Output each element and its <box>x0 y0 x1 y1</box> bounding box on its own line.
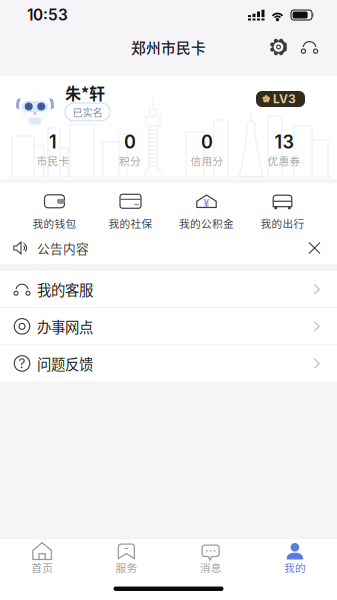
button[interactable]: 首页 <box>0 543 84 575</box>
staticText: 我的出行 <box>260 215 304 231</box>
staticText: 郑州市民卡 <box>131 36 206 58</box>
staticText: 信用分 <box>190 153 223 168</box>
button[interactable]: 我的 <box>253 543 337 575</box>
staticText: 办事网点 <box>37 316 93 337</box>
staticText: 积分 <box>119 153 141 168</box>
button[interactable]: 0 <box>168 131 245 168</box>
staticText: LV3 <box>273 91 296 106</box>
staticText: 服务 <box>115 560 137 575</box>
staticText: 0 <box>124 131 136 153</box>
staticText: 我的公积金 <box>179 215 234 231</box>
button[interactable]: 我的出行 <box>244 189 320 226</box>
button[interactable]: 13 <box>245 131 322 168</box>
button[interactable]: ? <box>0 345 337 382</box>
staticText: 首页 <box>31 560 53 575</box>
staticText: 10:53 <box>27 6 68 24</box>
button[interactable]: 消息 <box>168 543 253 575</box>
button[interactable]: 我的客服 <box>0 271 337 307</box>
button[interactable]: 已实名 <box>65 103 110 121</box>
staticText: 公告内容 <box>37 239 89 257</box>
staticText: 问题反馈 <box>37 353 93 374</box>
staticText: 我的社保 <box>108 215 152 231</box>
staticText: 我的客服 <box>37 279 93 300</box>
staticText: 1 <box>49 131 57 153</box>
button[interactable]: 我的钱包 <box>16 189 92 226</box>
button[interactable]: 服务 <box>84 543 168 575</box>
button[interactable]: 我的社保 <box>92 189 168 226</box>
staticText: 我的钱包 <box>32 215 76 231</box>
button[interactable]: 设置 <box>263 31 294 62</box>
button[interactable]: 办事网点 <box>0 308 337 345</box>
staticText: 消息 <box>200 560 222 575</box>
staticText: 朱*轩 <box>65 81 105 104</box>
staticText: ¥ <box>203 197 209 209</box>
staticText: 市民卡 <box>36 153 69 168</box>
staticText: 优惠券 <box>267 153 300 168</box>
button[interactable]: ¥ <box>168 189 244 226</box>
staticText: ? <box>18 355 25 371</box>
staticText: 0 <box>201 131 213 153</box>
button[interactable]: 客服 <box>294 31 325 62</box>
staticText: 已实名 <box>72 104 102 119</box>
staticText: 13 <box>274 131 293 153</box>
button[interactable]: 1 <box>14 131 91 168</box>
staticText: 我的 <box>284 560 306 575</box>
button[interactable]: 关闭公告 <box>304 237 325 258</box>
button[interactable]: 0 <box>91 131 168 168</box>
